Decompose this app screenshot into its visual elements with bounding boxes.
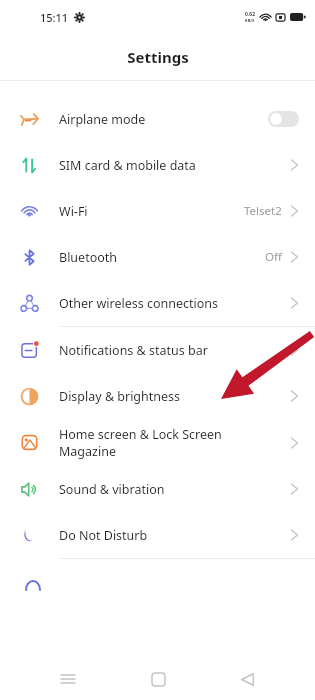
button[interactable]: Recent apps (46, 658, 90, 700)
button[interactable]: Sound & vibration (0, 466, 315, 512)
staticText: Airplane mode (59, 111, 262, 128)
button[interactable]: SIM card & mobile data (0, 142, 315, 188)
staticText: Other wireless connections (59, 295, 285, 312)
button[interactable]: Airplane mode toggle (268, 111, 299, 127)
staticText: Telset2 (244, 203, 282, 219)
button[interactable]: Back (225, 658, 269, 700)
staticText: Display & brightness (59, 388, 285, 405)
button[interactable]: Wi-Fi (0, 188, 315, 234)
button[interactable]: Airplane mode (0, 96, 315, 142)
button[interactable]: Notifications & status bar (0, 327, 315, 373)
staticText: 15:11 (40, 10, 69, 25)
button[interactable]: Display & brightness (0, 373, 315, 419)
staticText: Settings (127, 47, 189, 67)
button[interactable]: Home screen & Lock Screen Magazine (0, 419, 315, 466)
staticText: KB/S (245, 18, 255, 23)
staticText: Wi-Fi (59, 203, 238, 220)
button[interactable]: Do Not Disturb (0, 512, 315, 558)
staticText: Do Not Disturb (59, 527, 285, 544)
button[interactable]: Home (136, 658, 180, 700)
button[interactable]: Bluetooth (0, 234, 315, 280)
staticText: Notifications & status bar (59, 342, 285, 359)
staticText: Sound & vibration (59, 481, 285, 498)
staticText: Bluetooth (59, 249, 259, 266)
button[interactable]: Other wireless connections (0, 280, 315, 326)
staticText: SIM card & mobile data (59, 157, 285, 174)
staticText: 0.62 (245, 11, 255, 18)
staticText: Off (265, 249, 282, 265)
staticText: Home screen & Lock Screen Magazine (59, 426, 285, 459)
